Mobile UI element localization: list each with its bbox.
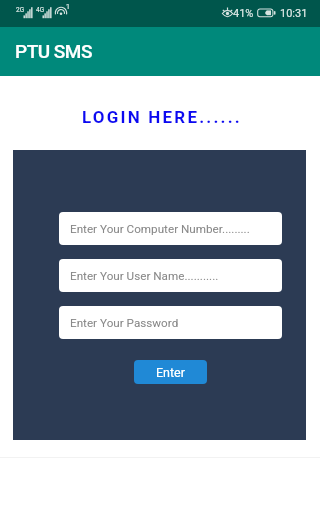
staticText: Enter Your Computer Number......... [70, 222, 250, 236]
staticText: Enter Your Password [70, 316, 179, 330]
staticText: 1 [66, 3, 70, 11]
button[interactable]: Enter [134, 360, 207, 384]
staticText: PTU SMS [15, 40, 92, 62]
staticText: 4G [36, 6, 45, 14]
staticText: 10:31 [280, 7, 308, 20]
staticText: LOGIN HERE...... [82, 107, 242, 127]
button[interactable]: Enter Your User Name........... [59, 259, 282, 292]
button[interactable]: Enter Your Password [59, 306, 282, 339]
button[interactable]: Enter Your Computer Number......... [59, 212, 282, 245]
staticText: 2G [16, 6, 25, 14]
staticText: Enter Your User Name........... [70, 269, 219, 283]
staticText: 41% [233, 7, 254, 20]
staticText: Enter [156, 365, 185, 380]
